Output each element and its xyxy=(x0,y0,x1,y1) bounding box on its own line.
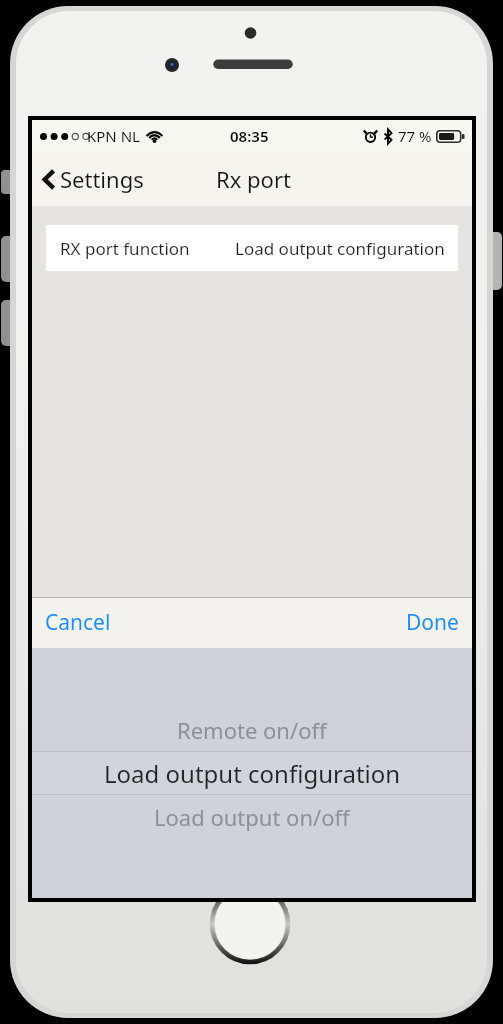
button[interactable]: Cancel xyxy=(32,599,124,646)
staticText: 77 % xyxy=(398,126,432,146)
staticText: KPN NL xyxy=(87,126,140,146)
staticText: Done xyxy=(406,608,459,637)
staticText: Settings xyxy=(60,164,144,194)
button[interactable]: Load output on/off xyxy=(32,795,472,838)
staticText: 08:35 xyxy=(230,126,269,146)
staticText: Cancel xyxy=(45,608,111,637)
staticText: Load output configuration xyxy=(104,757,401,790)
staticText: RX port function xyxy=(60,237,190,260)
button[interactable]: Settings xyxy=(32,157,158,201)
staticText: Rx port xyxy=(216,164,291,194)
button[interactable]: RX port function xyxy=(46,225,458,271)
staticText: Remote on/off xyxy=(177,715,327,745)
button[interactable]: Done xyxy=(393,599,472,646)
staticText: Load output on/off xyxy=(154,802,350,832)
staticText: Load output configuration xyxy=(235,237,445,260)
button[interactable]: Remote on/off xyxy=(32,708,472,751)
button[interactable]: Load output configuration xyxy=(32,752,472,794)
